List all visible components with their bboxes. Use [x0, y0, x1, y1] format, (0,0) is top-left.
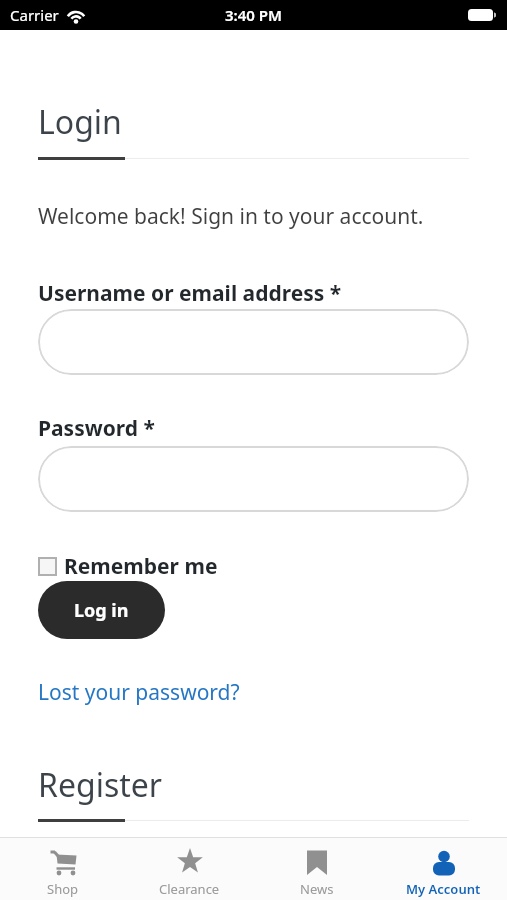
button[interactable]: Lost your password? — [38, 678, 240, 707]
staticText: Register — [38, 763, 163, 807]
staticText: Log in — [74, 598, 129, 623]
button[interactable]: Shop — [0, 838, 126, 900]
button[interactable]: Clearance — [126, 838, 253, 900]
button[interactable]: Remember me — [38, 552, 218, 581]
staticText: 3:40 PM — [225, 5, 282, 25]
button[interactable]: Log in — [38, 581, 165, 639]
staticText: Carrier — [10, 5, 59, 25]
staticText: Clearance — [159, 880, 220, 898]
staticText: Shop — [47, 880, 79, 898]
button[interactable]: My Account — [380, 838, 507, 900]
button[interactable] — [38, 446, 469, 512]
button[interactable]: News — [253, 838, 380, 900]
staticText: Remember me — [64, 552, 218, 581]
staticText: My Account — [406, 880, 481, 898]
staticText: Username or email address * — [38, 279, 342, 308]
staticText: Welcome back! Sign in to your account. — [38, 202, 424, 231]
staticText: Password * — [38, 414, 155, 443]
button[interactable] — [38, 309, 469, 375]
staticText: News — [300, 880, 334, 898]
staticText: Login — [38, 100, 122, 144]
